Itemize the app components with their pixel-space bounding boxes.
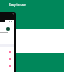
staticText: Easy to use: [9, 3, 26, 7]
